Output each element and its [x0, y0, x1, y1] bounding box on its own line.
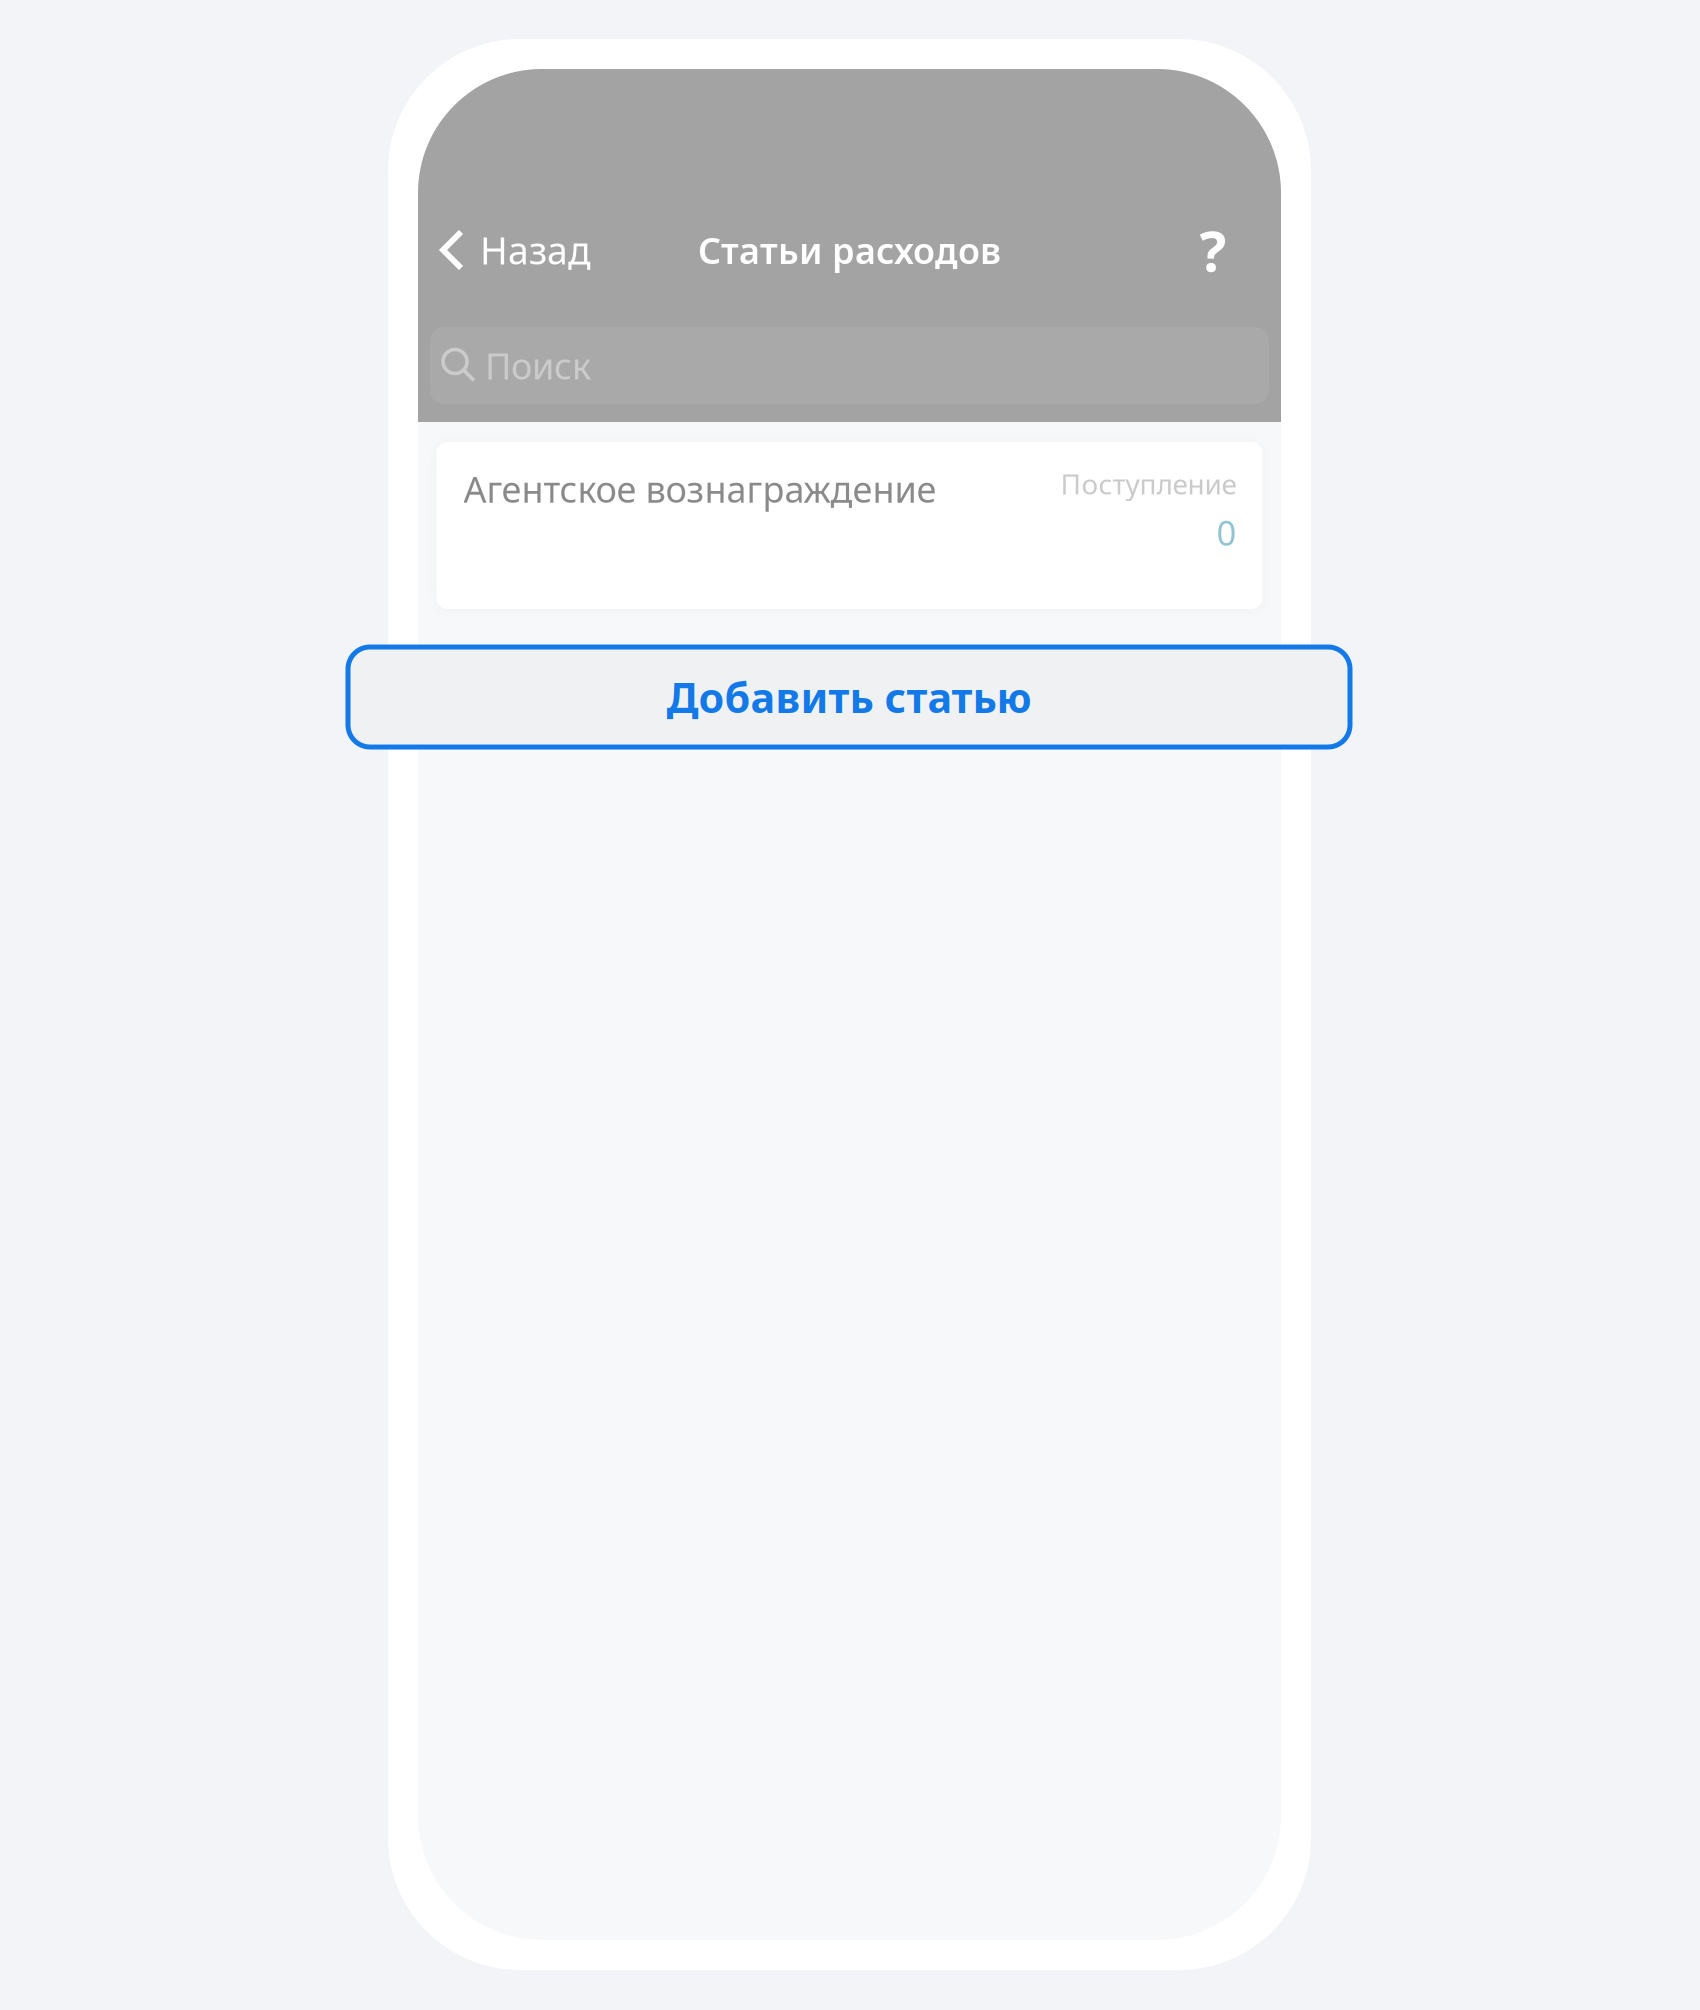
staticText: 0 — [1216, 509, 1236, 555]
button[interactable]: Help — [1187, 224, 1281, 276]
staticText: Добавить статью — [666, 670, 1031, 724]
button[interactable]: Поиск — [430, 327, 1269, 404]
button[interactable]: Добавить статью — [348, 647, 1350, 747]
button[interactable]: Назад — [418, 215, 591, 285]
staticText: Назад — [480, 225, 591, 275]
button[interactable]: Агентское вознаграждение — [436, 442, 1262, 609]
staticText: Статьи расходов — [698, 226, 1001, 274]
staticText: ? — [1199, 213, 1226, 287]
staticText: Поступление — [1060, 465, 1236, 502]
staticText: Агентское вознаграждение — [463, 465, 936, 513]
staticText: Поиск — [485, 342, 591, 389]
